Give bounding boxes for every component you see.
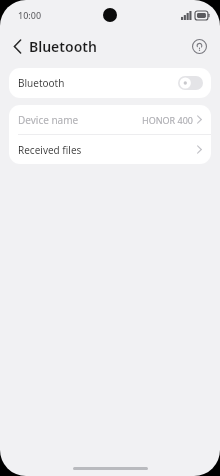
button[interactable]: Bluetooth [9, 68, 211, 98]
staticText: Bluetooth [29, 37, 97, 56]
button[interactable]: Help [188, 35, 210, 57]
staticText: Received files [18, 143, 82, 157]
staticText: Device name [18, 113, 79, 127]
button[interactable]: Back [0, 33, 103, 60]
button[interactable]: Received files [9, 135, 211, 164]
button[interactable]: Device name [9, 105, 211, 134]
staticText: 10:00 [18, 9, 42, 21]
staticText: Bluetooth [18, 76, 65, 90]
staticText: HONOR 400 [142, 114, 193, 126]
